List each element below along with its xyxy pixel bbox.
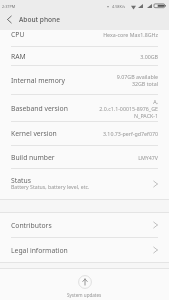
staticText: 2:37PM bbox=[2, 4, 16, 9]
button[interactable]: Status bbox=[0, 169, 169, 199]
staticText: Build number bbox=[11, 153, 55, 162]
button[interactable]: Kernel version bbox=[0, 122, 169, 145]
staticText: Contributors bbox=[11, 221, 52, 230]
button[interactable]: Legal information bbox=[0, 238, 169, 262]
button[interactable]: CPU bbox=[0, 30, 169, 46]
staticText: 2.0.c1.1-00015-8976_GE bbox=[99, 105, 158, 112]
staticText: RAM bbox=[11, 52, 26, 61]
staticText: 3.10.73-perf-gd7ef070 bbox=[102, 130, 158, 137]
staticText: About phone bbox=[19, 15, 60, 24]
staticText: System updates bbox=[67, 292, 102, 298]
staticText: Battery Status, battery level, etc. bbox=[11, 183, 90, 190]
staticText: 32GB total bbox=[131, 80, 158, 87]
button[interactable]: Internal memory bbox=[0, 66, 169, 94]
staticText: N_PACK-1 bbox=[134, 112, 158, 119]
staticText: LMY47V bbox=[138, 154, 158, 161]
staticText: Internal memory bbox=[11, 76, 66, 85]
button[interactable]: System updates bbox=[67, 275, 102, 298]
staticText: 3.00GB bbox=[140, 53, 158, 60]
staticText: Legal information bbox=[11, 246, 68, 255]
staticText: Status bbox=[11, 176, 31, 185]
staticText: Hexa-core Max1.8GHz bbox=[103, 31, 158, 38]
staticText: 9.07GB available bbox=[116, 73, 158, 80]
staticText: CPU bbox=[11, 30, 25, 39]
staticText: Kernel version bbox=[11, 129, 57, 138]
button[interactable]: Contributors bbox=[0, 213, 169, 237]
staticText: A, bbox=[153, 98, 158, 105]
button[interactable]: Back bbox=[0, 10, 19, 28]
button[interactable]: Build number bbox=[0, 146, 169, 168]
staticText: Baseband version bbox=[11, 104, 68, 113]
button[interactable]: Baseband version bbox=[0, 95, 169, 121]
button[interactable]: RAM bbox=[0, 47, 169, 65]
staticText: 4.58K/s bbox=[112, 4, 126, 9]
